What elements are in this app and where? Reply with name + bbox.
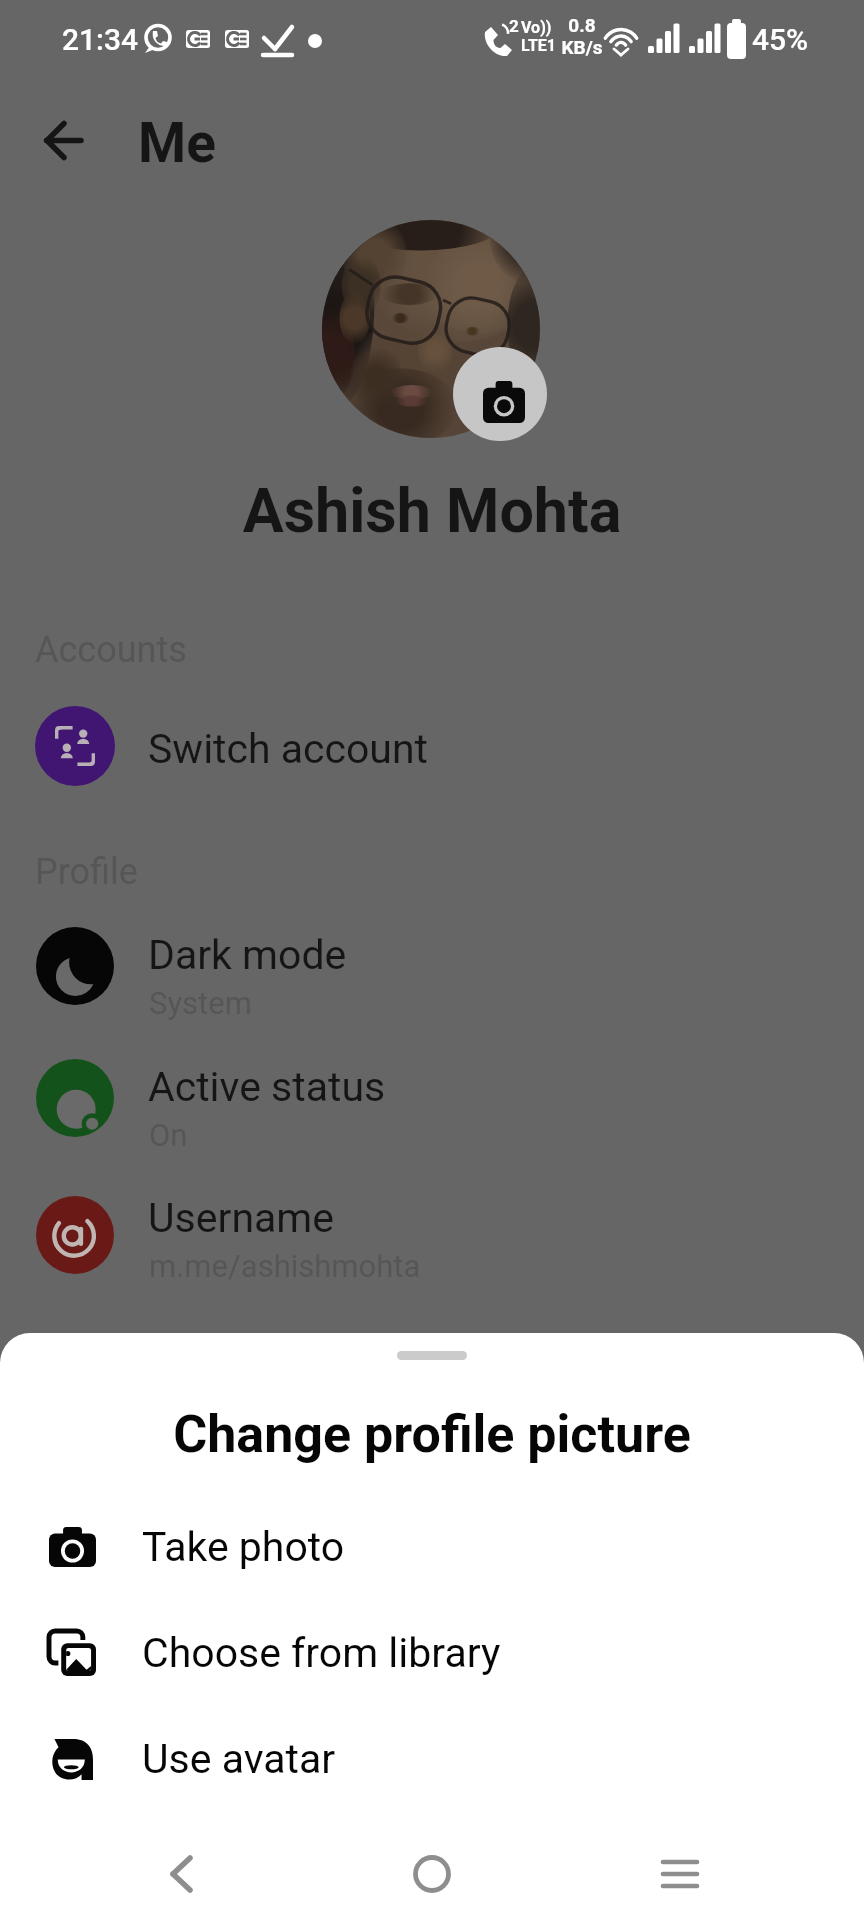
staticText: System (149, 985, 252, 1021)
staticText: Vo)) (521, 18, 552, 37)
staticText: Accounts (35, 629, 187, 671)
staticText: Username (148, 1194, 335, 1242)
button[interactable]: Dark mode (0, 903, 864, 1029)
staticText: On (149, 1117, 188, 1153)
staticText: 21:34 (62, 22, 139, 57)
button[interactable]: Change profile picture (453, 347, 547, 441)
button[interactable]: Active status (0, 1035, 864, 1161)
button[interactable]: Username (0, 1166, 864, 1292)
staticText: Dark mode (148, 931, 347, 979)
staticText: Ashish Mohta (0, 475, 864, 546)
staticText: 2 (509, 16, 519, 36)
staticText: LTE1 (521, 36, 556, 55)
staticText: Choose from library (142, 1629, 501, 1677)
staticText: Active status (148, 1063, 386, 1111)
staticText: 45% (752, 22, 809, 57)
staticText: Profile (35, 851, 138, 893)
staticText: 0.8 (562, 14, 602, 36)
staticText: Me (138, 111, 216, 175)
button[interactable]: Switch account (0, 683, 864, 809)
staticText: KB/s (560, 36, 604, 58)
button[interactable]: Choose from library (0, 1600, 864, 1706)
staticText: Take photo (142, 1523, 345, 1571)
staticText: Use avatar (142, 1735, 336, 1783)
button[interactable]: Take photo (0, 1494, 864, 1600)
staticText: m.me/ashishmohta (149, 1248, 421, 1284)
staticText: Change profile picture (0, 1404, 864, 1465)
staticText: Switch account (148, 725, 429, 773)
button[interactable]: Back (22, 102, 100, 180)
button[interactable]: Use avatar (0, 1706, 864, 1812)
